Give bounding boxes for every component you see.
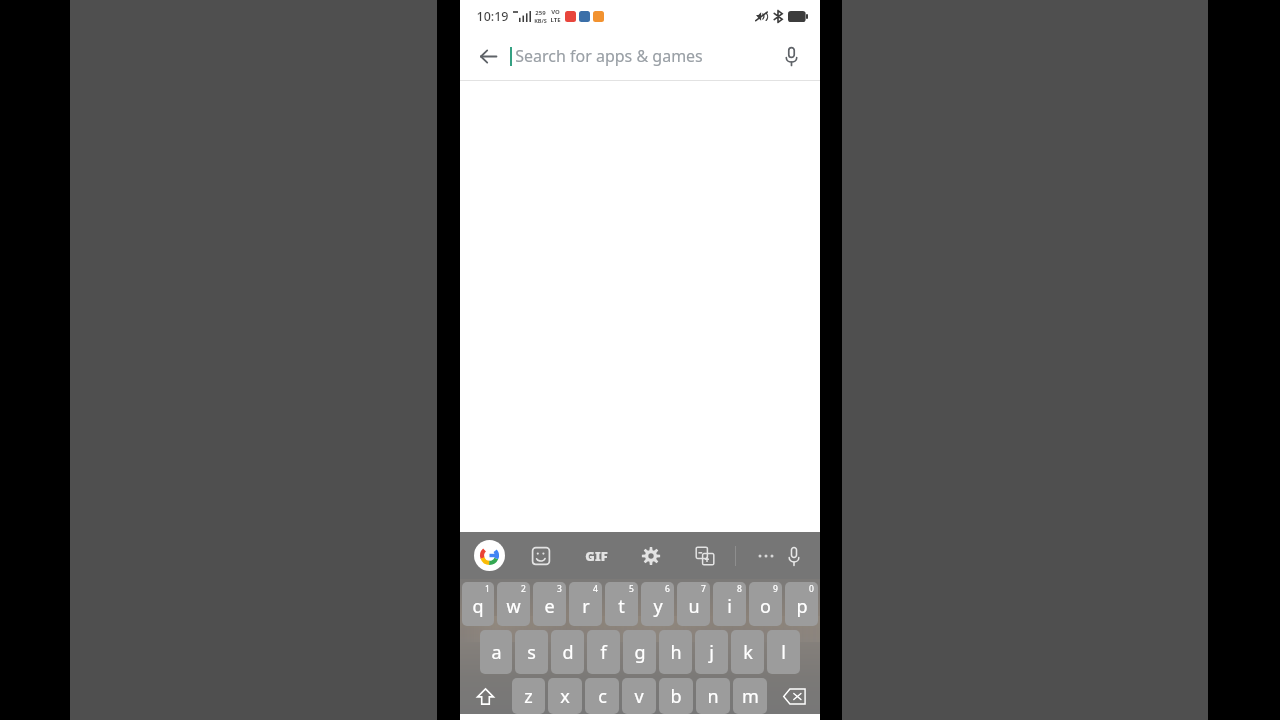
staticText: 8 [737, 583, 742, 595]
button[interactable]: 2 [497, 582, 530, 626]
button[interactable]: Search for apps & games [510, 32, 770, 80]
button[interactable]: 3 [533, 582, 566, 626]
staticText: o [760, 594, 771, 619]
staticText: m [742, 684, 759, 709]
button[interactable]: 1 [462, 582, 494, 626]
button[interactable]: v [622, 678, 656, 714]
button[interactable]: GIF [579, 539, 613, 573]
staticText: 3 [557, 583, 562, 595]
staticText: d [562, 640, 574, 665]
button[interactable]: 0 [785, 582, 818, 626]
button[interactable]: 6 [641, 582, 674, 626]
button[interactable]: Settings [635, 540, 667, 572]
staticText: y [653, 594, 663, 619]
staticText: 0 [809, 583, 814, 595]
staticText: 7 [701, 583, 706, 595]
button[interactable]: g [623, 630, 656, 674]
button[interactable]: Google search [474, 540, 505, 571]
staticText: s [527, 640, 536, 665]
staticText: g [634, 640, 646, 665]
staticText: 1 [485, 583, 490, 595]
button[interactable]: d [551, 630, 584, 674]
staticText: r [582, 594, 590, 619]
button[interactable]: Voice search [770, 35, 812, 77]
button[interactable]: Back [466, 34, 510, 78]
staticText: 4 [593, 583, 598, 595]
staticText: a [491, 640, 502, 665]
button[interactable]: z [512, 678, 545, 714]
staticText: q [472, 594, 484, 619]
staticText: l [781, 640, 786, 665]
staticText: p [796, 594, 808, 619]
staticText: n [707, 684, 719, 709]
staticText: Search for apps & games [515, 45, 703, 67]
button[interactable]: s [515, 630, 548, 674]
staticText: t [618, 594, 625, 619]
button[interactable]: k [731, 630, 764, 674]
staticText: z [524, 684, 533, 709]
button[interactable]: m [733, 678, 767, 714]
button[interactable]: l [767, 630, 800, 674]
button[interactable]: n [696, 678, 730, 714]
button[interactable]: c [585, 678, 619, 714]
staticText: VO [551, 8, 560, 16]
staticText: f [600, 640, 607, 665]
staticText: k [743, 640, 753, 665]
button[interactable]: Voice input [782, 539, 806, 573]
staticText: 259 [535, 9, 546, 17]
staticText: GIF [585, 547, 608, 565]
staticText: KB/S [534, 17, 547, 24]
button[interactable]: Translate [689, 540, 721, 572]
staticText: u [688, 594, 700, 619]
button[interactable]: Shift [462, 678, 509, 714]
staticText: b [670, 684, 682, 709]
staticText: x [560, 684, 570, 709]
staticText: c [598, 684, 607, 709]
staticText: v [634, 684, 644, 709]
button[interactable]: j [695, 630, 728, 674]
staticText: 2 [521, 583, 526, 595]
staticText: w [506, 594, 521, 619]
button[interactable]: More options [750, 540, 782, 572]
staticText: 10:19 [476, 8, 509, 25]
staticText: h [670, 640, 682, 665]
button[interactable]: 4 [569, 582, 602, 626]
staticText: LTE [550, 16, 561, 24]
button[interactable]: x [548, 678, 582, 714]
staticText: 9 [773, 583, 778, 595]
staticText: i [727, 594, 732, 619]
button[interactable]: 9 [749, 582, 782, 626]
button[interactable]: h [659, 630, 692, 674]
button[interactable]: Backspace [770, 678, 818, 714]
button[interactable]: 8 [713, 582, 746, 626]
button[interactable]: 5 [605, 582, 638, 626]
button[interactable]: f [587, 630, 620, 674]
button[interactable]: a [480, 630, 512, 674]
staticText: j [709, 640, 714, 665]
staticText: 6 [665, 583, 670, 595]
staticText: e [544, 594, 555, 619]
staticText: 5 [629, 583, 634, 595]
button[interactable]: b [659, 678, 693, 714]
button[interactable]: Stickers [525, 540, 557, 572]
button[interactable]: 7 [677, 582, 710, 626]
